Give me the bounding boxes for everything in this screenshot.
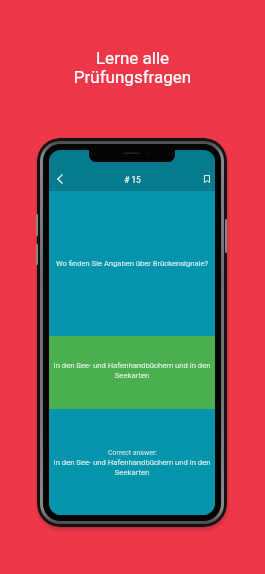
staticText: Lerne alle Prüfungsfragen — [0, 48, 265, 87]
button[interactable]: Back — [50, 167, 70, 191]
staticText: In den See- und Hafenhandbüchern und in … — [53, 361, 211, 379]
button[interactable]: In den See- und Hafenhandbüchern und in … — [49, 336, 215, 409]
staticText: # 15 — [124, 175, 141, 185]
button[interactable]: Bookmark — [197, 167, 215, 191]
staticText: Correct answer: — [108, 449, 157, 457]
staticText: In den See- und Hafenhandbüchern und in … — [53, 458, 211, 476]
staticText: Wo finden Sie Angaben über Brückensignal… — [53, 259, 211, 268]
